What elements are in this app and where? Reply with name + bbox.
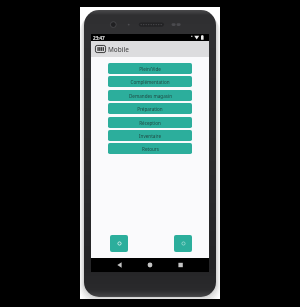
staticText: Réception bbox=[139, 120, 161, 126]
staticText: Retours bbox=[142, 146, 159, 152]
staticText: Plein/Vide bbox=[139, 66, 161, 72]
button[interactable]: Plein/Vide bbox=[108, 63, 192, 74]
button[interactable]: Scan barcode bbox=[110, 235, 128, 252]
button[interactable]: Préparation bbox=[108, 103, 192, 114]
staticText: 23:47 bbox=[93, 35, 105, 41]
staticText: Mobile bbox=[108, 45, 129, 54]
button[interactable]: Inventaire bbox=[108, 130, 192, 141]
button[interactable]: Retours bbox=[108, 143, 192, 154]
staticText: Complémentation bbox=[130, 79, 170, 85]
button[interactable]: Demandes magasin bbox=[108, 90, 192, 101]
button[interactable]: Complémentation bbox=[108, 76, 192, 87]
staticText: Inventaire bbox=[139, 133, 161, 139]
staticText: Préparation bbox=[137, 106, 163, 112]
staticText: Demandes magasin bbox=[129, 93, 172, 99]
button[interactable]: Réception bbox=[108, 117, 192, 128]
button[interactable]: Settings bbox=[174, 235, 192, 252]
